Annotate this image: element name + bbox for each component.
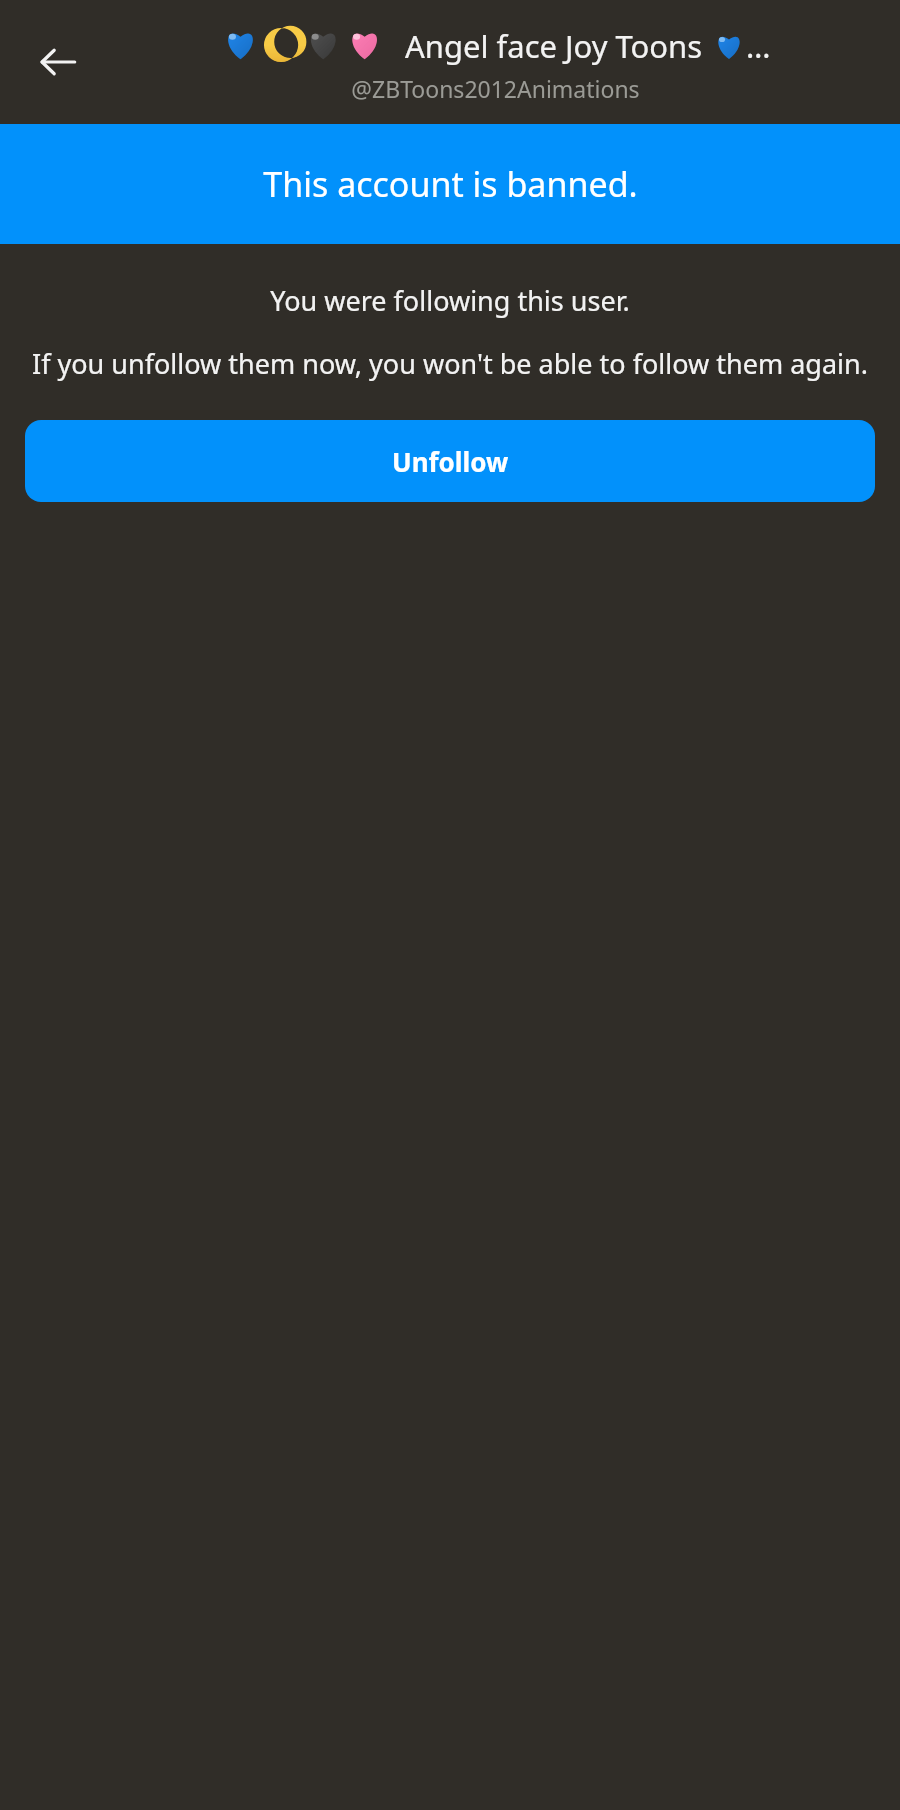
staticText: Unfollow [392,444,509,479]
staticText: … [746,25,771,67]
staticText: This account is banned. [263,161,638,207]
staticText: Angel face Joy Toons [405,25,703,67]
staticText: @ZBToons2012Animations [351,73,640,104]
staticText: If you unfollow them now, you won't be a… [25,345,875,382]
button[interactable]: Back [22,26,94,98]
button[interactable]: Unfollow [25,420,875,502]
staticText: You were following this user. [270,282,630,319]
